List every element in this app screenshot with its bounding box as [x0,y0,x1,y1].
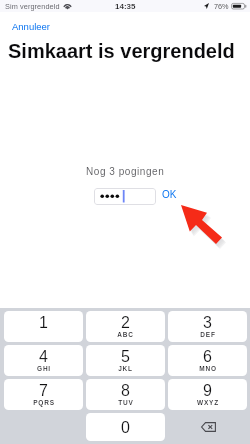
staticText: 2 [121,314,130,332]
staticText: MNO [199,365,217,372]
button[interactable]: OK [162,189,177,200]
staticText: Annuleer [12,21,51,32]
staticText: Nog 3 pogingen [86,166,165,177]
button[interactable]: 7 [4,379,83,410]
button[interactable]: 0 [86,413,165,441]
button[interactable]: 3 [168,311,247,342]
staticText: 5 [121,348,130,366]
button[interactable]: 4 [4,345,83,376]
staticText: JKL [118,365,133,372]
staticText: OK [162,189,177,200]
staticText: PQRS [33,399,55,406]
staticText: 1 [39,314,48,332]
staticText: ABC [117,331,134,338]
staticText: 3 [203,314,212,332]
staticText: WXYZ [197,399,219,406]
staticText: TUV [118,399,134,406]
button[interactable] [94,188,156,205]
button[interactable]: Annuleer [12,21,51,32]
staticText: GHI [37,365,51,372]
staticText: 7 [39,382,48,400]
button[interactable]: 8 [86,379,165,410]
staticText: 4 [39,348,48,366]
staticText: Simkaart is vergrendeld [8,40,235,62]
staticText: 14:35 [115,2,136,11]
staticText: 6 [203,348,212,366]
staticText: 9 [203,382,212,400]
button[interactable]: 9 [168,379,247,410]
staticText: 8 [121,382,130,400]
staticText: 76% [214,2,229,10]
staticText: Sim vergrendeld [5,2,60,10]
staticText: DEF [200,331,216,338]
button[interactable]: 6 [168,345,247,376]
staticText: 0 [121,419,130,437]
button[interactable]: Delete [169,413,248,441]
button[interactable]: 5 [86,345,165,376]
button[interactable]: 1 [4,311,83,342]
button[interactable]: 2 [86,311,165,342]
